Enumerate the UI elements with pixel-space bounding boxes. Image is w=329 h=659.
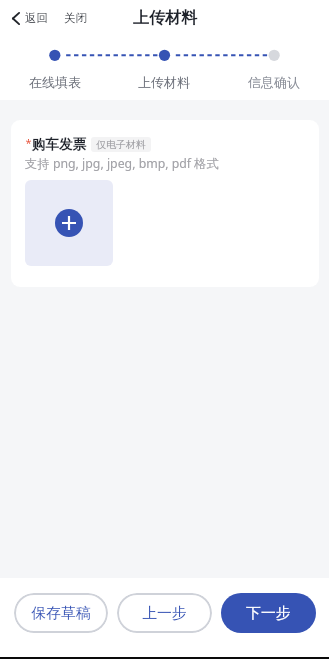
button[interactable]: 上传购车发票 <box>25 180 113 266</box>
button[interactable]: 关闭 <box>59 5 92 31</box>
staticText: 支持 png, jpg, jpeg, bmp, pdf 格式 <box>25 155 219 172</box>
button[interactable]: 下一步 <box>221 593 316 633</box>
staticText: 在线填表 <box>29 74 81 90</box>
staticText: * <box>25 135 32 150</box>
staticText: 上一步 <box>142 604 187 623</box>
staticText: 关闭 <box>64 11 87 25</box>
button[interactable]: 返回 <box>0 5 54 31</box>
staticText: 下一步 <box>246 604 291 623</box>
staticText: 购车发票 <box>32 136 86 153</box>
staticText: 保存草稿 <box>31 604 91 623</box>
staticText: 返回 <box>25 11 48 25</box>
button[interactable]: 保存草稿 <box>14 593 108 633</box>
staticText: 上传材料 <box>138 74 190 90</box>
button[interactable]: 上一步 <box>117 593 212 633</box>
staticText: 信息确认 <box>248 74 300 90</box>
staticText: 仅电子材料 <box>96 138 146 151</box>
staticText: 上传材料 <box>133 8 197 28</box>
